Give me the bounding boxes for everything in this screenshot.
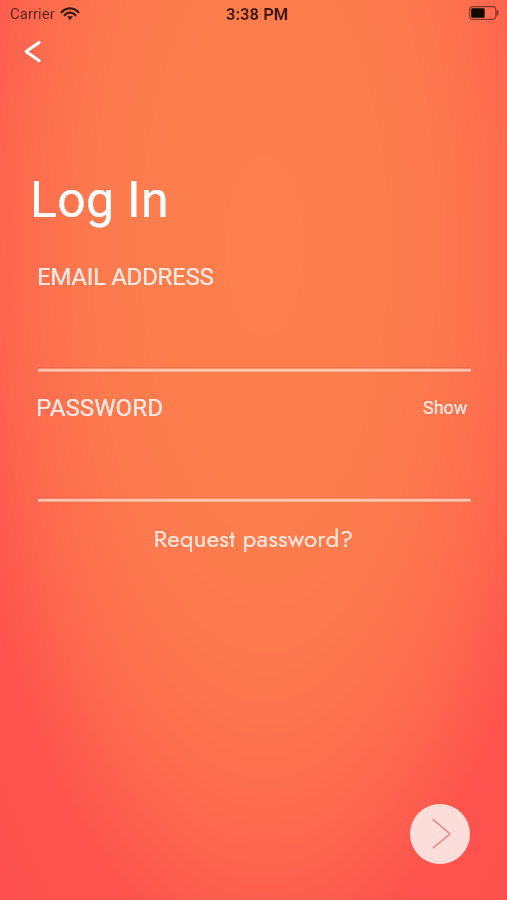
staticText: 3:38 PM [226, 5, 289, 24]
staticText: Log In [30, 171, 169, 230]
staticText: Show [423, 397, 468, 418]
staticText: Carrier [10, 5, 55, 23]
button[interactable]: Request password? [0, 521, 507, 556]
staticText: PASSWORD [36, 394, 164, 422]
button[interactable]: PASSWORD [36, 391, 406, 502]
button[interactable]: Show [423, 397, 468, 418]
button[interactable]: Continue [410, 804, 470, 864]
button[interactable]: EMAIL ADDRESS [37, 260, 471, 372]
staticText: Request password? [0, 521, 507, 556]
button[interactable]: Back [6, 29, 52, 75]
staticText: EMAIL ADDRESS [37, 263, 214, 291]
